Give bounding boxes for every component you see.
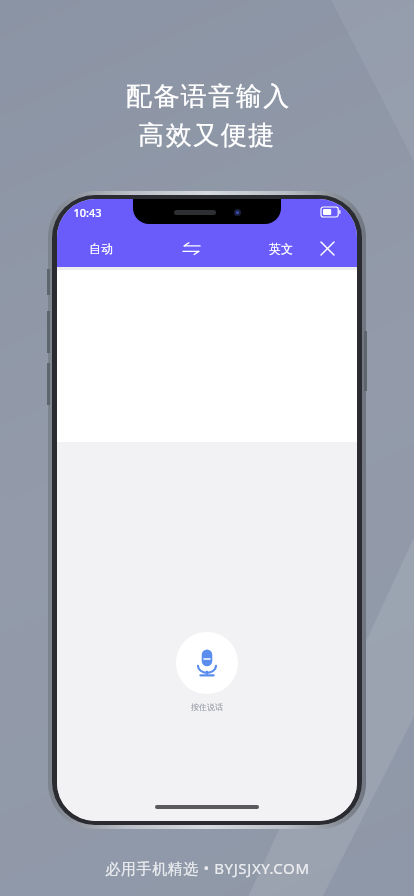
button[interactable]: 英文: [263, 238, 299, 259]
button[interactable]: Hold to speak: [176, 632, 238, 694]
staticText: 自动: [89, 241, 113, 256]
button[interactable]: Swap languages: [176, 233, 206, 263]
button[interactable]: 自动: [83, 238, 119, 259]
button[interactable]: Close: [313, 234, 341, 262]
staticText: 配备语音输入: [125, 80, 290, 113]
staticText: 必用手机精选 • BYJSJXY.COM: [105, 858, 310, 878]
staticText: 英文: [269, 241, 293, 256]
staticText: 按住说话: [191, 702, 223, 712]
staticText: 高效又便捷: [138, 119, 276, 152]
staticText: 10:43: [73, 205, 102, 220]
